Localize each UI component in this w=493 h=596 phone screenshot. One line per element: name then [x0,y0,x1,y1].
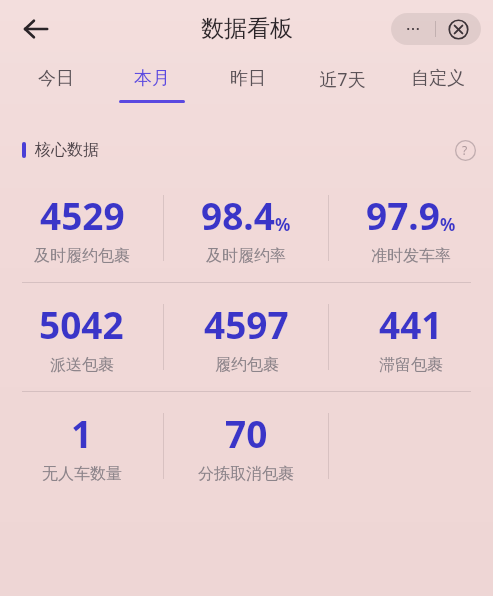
staticText: 分拣取消包裹 [198,464,294,484]
button[interactable]: 97.9 [329,186,493,270]
staticText: 及时履约包裹 [34,246,130,266]
staticText: 数据看板 [201,14,293,43]
staticText: 5042 [39,299,124,349]
staticText: 1 [71,408,93,458]
staticText: 4597 [204,299,289,349]
staticText: 4529 [40,190,125,240]
staticText: 97.9 [366,190,440,240]
button[interactable]: 70 [164,404,328,488]
staticText: 昨日 [230,67,266,90]
button[interactable]: Close [436,13,481,45]
button[interactable]: 1 [0,404,163,488]
staticText: 派送包裹 [50,355,114,375]
staticText: 今日 [38,67,74,90]
staticText: 滞留包裹 [379,355,443,375]
button[interactable]: Back [14,7,58,51]
staticText: 本月 [134,67,170,90]
button[interactable]: More [391,13,435,45]
button[interactable]: 近7天 [295,58,390,114]
staticText: 履约包裹 [215,355,279,375]
staticText: ? [462,142,468,158]
button[interactable]: 98.4 [164,186,328,270]
button[interactable]: 441 [329,295,493,379]
staticText: 98.4 [201,190,275,240]
button[interactable]: 自定义 [390,58,485,114]
staticText: 441 [379,299,443,349]
button[interactable]: 昨日 [200,58,295,114]
button[interactable]: 4529 [0,186,163,270]
button[interactable]: 今日 [8,58,104,114]
staticText: 核心数据 [35,140,99,160]
staticText: 自定义 [411,67,465,90]
staticText: 及时履约率 [206,246,286,266]
staticText: % [440,213,456,236]
button[interactable]: 5042 [0,295,163,379]
staticText: 准时发车率 [371,246,451,266]
button[interactable]: 本月 [104,58,200,114]
staticText: 70 [225,408,268,458]
button[interactable]: Help [452,137,478,163]
staticText: 无人车数量 [42,464,122,484]
staticText: 近7天 [319,67,366,92]
button[interactable]: 4597 [164,295,328,379]
staticText: % [275,213,291,236]
